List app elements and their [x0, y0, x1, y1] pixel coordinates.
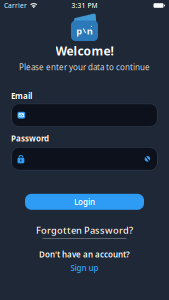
button[interactable]: Email — [11, 103, 158, 127]
staticText: Login — [74, 196, 95, 207]
staticText: Sign up — [70, 263, 98, 273]
staticText: n — [87, 25, 93, 37]
staticText: Please enter your data to continue — [19, 62, 150, 72]
staticText: Welcome! — [55, 43, 113, 59]
staticText: Carrier — [4, 1, 27, 10]
button[interactable]: Login — [25, 194, 144, 210]
staticText: p — [76, 25, 82, 37]
button[interactable]: Forgotten Password? — [36, 224, 133, 239]
staticText: Password — [11, 133, 49, 144]
button[interactable]: Show password — [143, 155, 151, 163]
staticText: Don't have an account? — [39, 249, 130, 260]
button[interactable]: Password — [11, 147, 158, 171]
button[interactable]: Sign up — [70, 263, 98, 273]
staticText: Email — [11, 91, 32, 101]
staticText: 3:31 PM — [71, 1, 97, 10]
staticText: Forgotten Password? — [36, 224, 133, 236]
